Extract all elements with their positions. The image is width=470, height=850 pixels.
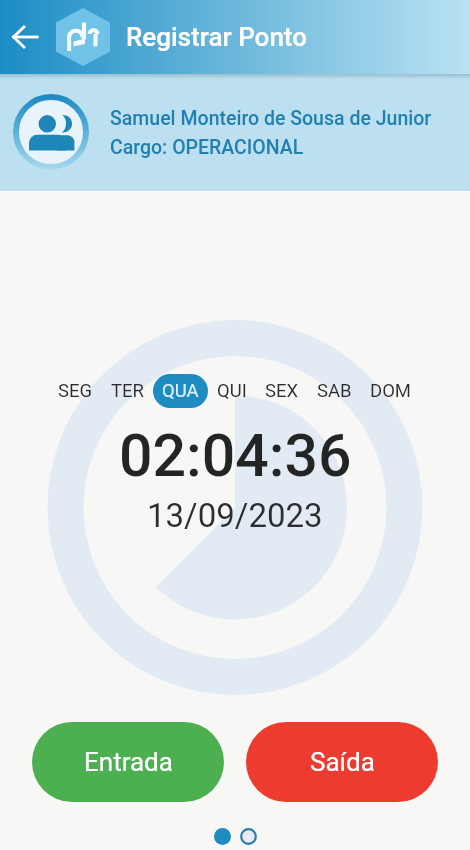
staticText: SEX: [265, 380, 299, 402]
staticText: Samuel Monteiro de Sousa de Junior: [110, 107, 432, 130]
staticText: TER: [111, 380, 144, 402]
button[interactable]: DOM: [361, 374, 421, 408]
staticText: Cargo: OPERACIONAL: [110, 136, 304, 159]
button[interactable]: QUI: [208, 374, 256, 408]
staticText: Registrar Ponto: [126, 22, 307, 52]
staticText: SAB: [317, 380, 352, 402]
button[interactable]: SEG: [49, 374, 102, 408]
button[interactable]: Saída: [246, 722, 438, 802]
staticText: QUI: [217, 380, 247, 402]
staticText: 02:04:36: [119, 421, 352, 490]
other: App logo: [56, 8, 110, 66]
staticText: DOM: [370, 380, 412, 402]
button[interactable]: SEX: [256, 374, 308, 408]
button[interactable]: Entrada: [32, 722, 224, 802]
staticText: Saída: [310, 747, 375, 777]
button[interactable]: TER: [102, 374, 153, 408]
button[interactable]: QUA: [153, 374, 208, 408]
staticText: Entrada: [84, 747, 173, 777]
staticText: SEG: [58, 380, 93, 402]
staticText: 13/09/2023: [147, 496, 323, 535]
button[interactable]: Page 2: [240, 828, 257, 845]
button[interactable]: Back: [9, 21, 41, 53]
button[interactable]: SAB: [308, 374, 361, 408]
button[interactable]: Page 1: [214, 828, 231, 845]
staticText: QUA: [162, 380, 199, 402]
